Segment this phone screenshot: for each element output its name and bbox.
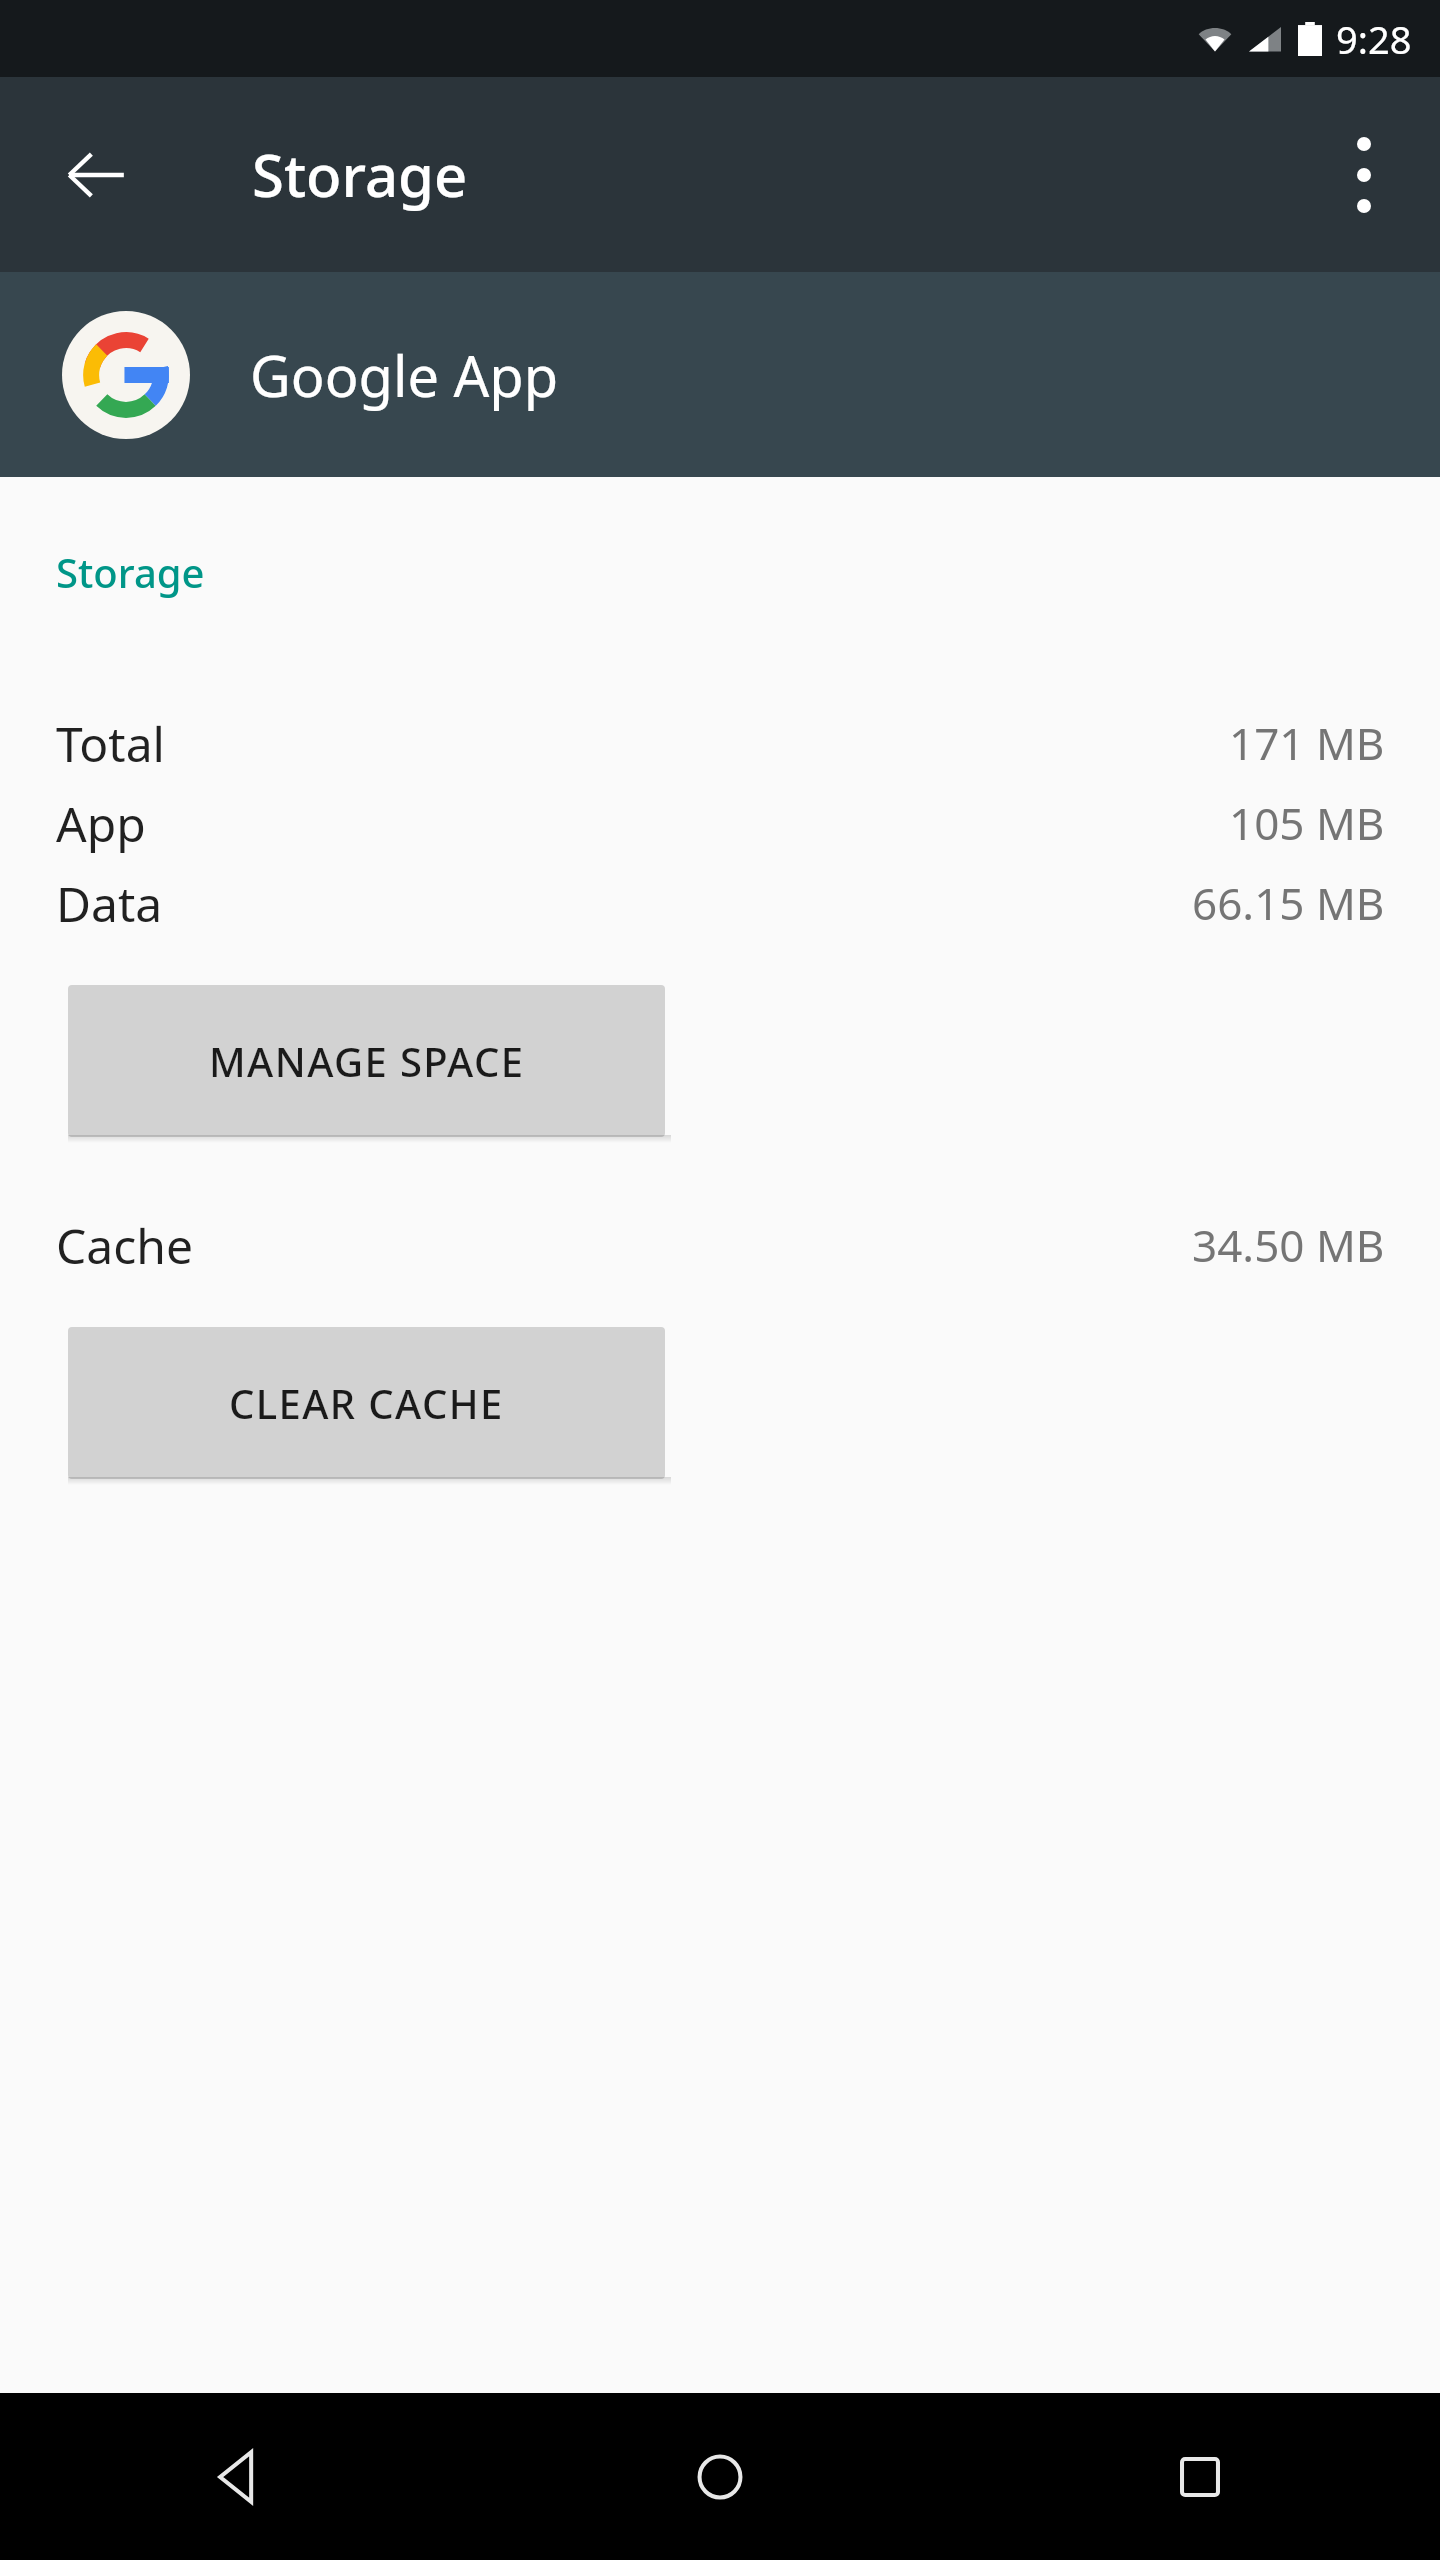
- button[interactable]: CLEAR CACHE: [68, 1327, 665, 1479]
- button[interactable]: Cache: [0, 1205, 1440, 1285]
- button[interactable]: Data: [0, 863, 1440, 943]
- button[interactable]: MANAGE SPACE: [68, 985, 665, 1137]
- staticText: Storage: [252, 135, 468, 214]
- button[interactable]: App: [0, 783, 1440, 863]
- button[interactable]: More options: [1308, 119, 1420, 231]
- staticText: Cache: [56, 1213, 194, 1278]
- staticText: Storage: [56, 545, 205, 599]
- staticText: 105 MB: [1229, 793, 1385, 853]
- button[interactable]: Navigate up: [40, 119, 152, 231]
- staticText: Total: [56, 711, 166, 776]
- staticText: MANAGE SPACE: [209, 1034, 525, 1088]
- button[interactable]: Back: [0, 2393, 480, 2560]
- staticText: 171 MB: [1229, 713, 1385, 773]
- button[interactable]: Recents: [960, 2393, 1440, 2560]
- staticText: CLEAR CACHE: [229, 1376, 504, 1430]
- staticText: App: [56, 791, 146, 856]
- staticText: Google App: [250, 337, 559, 413]
- staticText: Data: [56, 871, 163, 936]
- button[interactable]: Total: [0, 703, 1440, 783]
- staticText: 34.50 MB: [1192, 1215, 1385, 1275]
- staticText: 66.15 MB: [1192, 873, 1385, 933]
- button[interactable]: Google App: [0, 272, 1440, 477]
- button[interactable]: Home: [480, 2393, 960, 2560]
- staticText: 9:28: [1336, 13, 1412, 65]
